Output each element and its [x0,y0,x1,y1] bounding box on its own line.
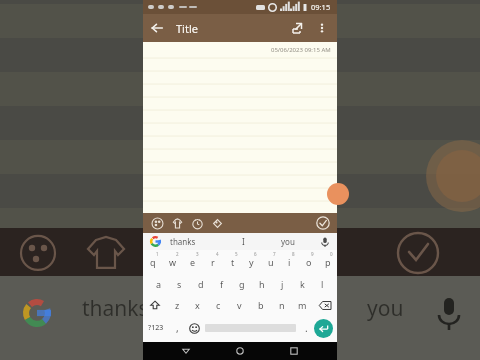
button[interactable]: Back [143,14,171,42]
button[interactable]: k [292,272,312,294]
button[interactable]: Recents [283,342,305,360]
button[interactable]: 9 [299,250,318,272]
button[interactable]: Color palette [147,213,167,233]
button[interactable]: n [271,294,292,316]
button[interactable]: More options [310,16,334,40]
button[interactable]: 0 [318,250,337,272]
staticText: 8 [292,251,295,257]
staticText: u [268,256,274,268]
button[interactable]: s [169,272,190,294]
button[interactable]: m [292,294,313,316]
button[interactable]: a [148,272,169,294]
staticText: e [190,256,196,268]
button[interactable]: Shift [143,294,167,316]
button[interactable]: Style [167,213,187,233]
button[interactable]: Enter [314,319,333,338]
staticText: f [220,278,224,290]
staticText: m [298,299,307,311]
button[interactable]: thanks [170,236,229,247]
button[interactable]: Back [175,342,197,360]
button[interactable]: you [258,236,317,247]
staticText: h [259,278,265,290]
staticText: 4 [216,251,219,257]
button[interactable]: 5 [223,250,242,272]
button[interactable]: b [250,294,271,316]
button[interactable]: Voice input [317,234,333,250]
staticText: thanks [170,236,196,247]
button[interactable]: 2 [163,250,183,272]
staticText: n [279,299,285,311]
staticText: you [281,236,295,247]
staticText: y [249,256,254,268]
button[interactable]: I [229,236,258,247]
button[interactable]: Google [149,235,162,248]
button[interactable]: Emoji [185,316,203,340]
staticText: 0 [330,251,333,257]
staticText: 7 [273,251,276,257]
staticText: a [156,278,162,290]
staticText: Title [176,21,198,36]
staticText: 09:15 [311,2,331,12]
staticText: 5 [235,251,238,257]
staticText: 05/06/2023 09:15 AM [271,46,331,54]
button[interactable]: z [167,294,187,316]
staticText: 1 [156,251,159,257]
staticText: x [195,299,200,311]
button[interactable]: 4 [203,250,223,272]
staticText: c [216,299,221,311]
staticText: k [300,278,305,290]
button[interactable]: Reminder [187,213,207,233]
button[interactable]: 3 [183,250,203,272]
staticText: . [305,321,308,335]
staticText: p [325,256,331,268]
staticText: I [242,236,245,247]
staticText: you [367,294,404,323]
staticText: o [306,256,312,268]
staticText: t [231,256,235,268]
staticText: 6 [254,251,257,257]
staticText: z [175,299,180,311]
staticText: l [321,278,324,290]
button[interactable]: Period [298,316,314,340]
staticText: q [150,256,156,268]
staticText: , [176,321,179,335]
button[interactable]: x [187,294,208,316]
staticText: i [288,256,291,268]
staticText: d [198,278,204,290]
button[interactable]: 7 [261,250,280,272]
staticText: 9 [311,251,314,257]
button[interactable]: Share [282,14,310,42]
button[interactable]: ?123 [143,316,169,340]
staticText: b [258,299,264,311]
button[interactable]: f [211,272,232,294]
button[interactable]: j [272,272,292,294]
staticText: r [211,256,215,268]
button[interactable]: 6 [242,250,261,272]
button[interactable]: c [208,294,229,316]
button[interactable]: 8 [280,250,299,272]
button[interactable]: d [190,272,211,294]
staticText: v [237,299,242,311]
button[interactable]: Tag [207,213,227,233]
staticText: w [169,256,177,268]
staticText: s [177,278,182,290]
button[interactable]: g [232,272,252,294]
button[interactable]: Backspace [313,294,337,316]
staticText: j [281,278,284,290]
staticText: g [239,278,245,290]
button[interactable]: Home [229,342,251,360]
button[interactable]: Comma [169,316,185,340]
button[interactable]: h [252,272,272,294]
staticText: 3 [196,251,199,257]
staticText: ?123 [148,323,164,333]
button[interactable]: 1 [143,250,163,272]
button[interactable]: l [312,272,332,294]
button[interactable]: Done [313,213,333,233]
staticText: 2 [176,251,179,257]
button[interactable]: v [229,294,250,316]
button[interactable]: Add [327,183,349,205]
staticText: thanks [82,294,149,323]
